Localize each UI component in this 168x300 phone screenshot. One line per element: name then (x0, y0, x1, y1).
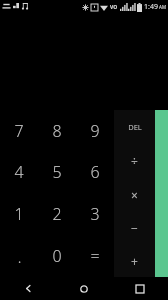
button[interactable]: 4 (0, 151, 38, 193)
button[interactable]: 9 (76, 110, 114, 151)
button[interactable]: 1 (0, 193, 38, 235)
staticText: − (131, 220, 138, 236)
staticText: 5 (52, 161, 62, 183)
staticText: 1:49 (144, 2, 158, 12)
staticText: = (90, 245, 100, 267)
staticText: 2 (52, 203, 62, 225)
staticText: DEL (128, 122, 142, 132)
staticText: 0 (52, 245, 62, 267)
staticText: 1 (14, 203, 24, 225)
button[interactable]: 8 (38, 110, 76, 151)
button[interactable]: 3 (76, 193, 114, 235)
button[interactable]: 5 (38, 151, 76, 193)
button[interactable]: Back (0, 277, 56, 300)
button[interactable]: 7 (0, 110, 38, 151)
staticText: ÷ (131, 153, 138, 169)
staticText: × (131, 187, 138, 203)
staticText: 6 (90, 161, 100, 183)
button[interactable]: + (114, 244, 155, 277)
button[interactable]: × (114, 178, 155, 211)
button[interactable]: DEL (114, 110, 155, 144)
staticText: 9 (90, 120, 100, 142)
staticText: 4 (14, 161, 24, 183)
button[interactable]: 0 (38, 235, 76, 277)
button[interactable]: 6 (76, 151, 114, 193)
staticText: VO (110, 4, 118, 11)
staticText: 7 (14, 120, 24, 142)
button[interactable]: Home (56, 277, 112, 300)
staticText: . (17, 245, 22, 268)
button[interactable]: − (114, 211, 155, 244)
button[interactable]: = (76, 235, 114, 277)
button[interactable]: Recent apps (112, 277, 168, 300)
staticText: AM (159, 4, 166, 10)
staticText: 8 (52, 120, 62, 142)
staticText: + (131, 253, 138, 269)
button[interactable]: ÷ (114, 144, 155, 178)
staticText: 3 (90, 203, 100, 225)
button[interactable]: . (0, 235, 38, 277)
button[interactable]: 2 (38, 193, 76, 235)
